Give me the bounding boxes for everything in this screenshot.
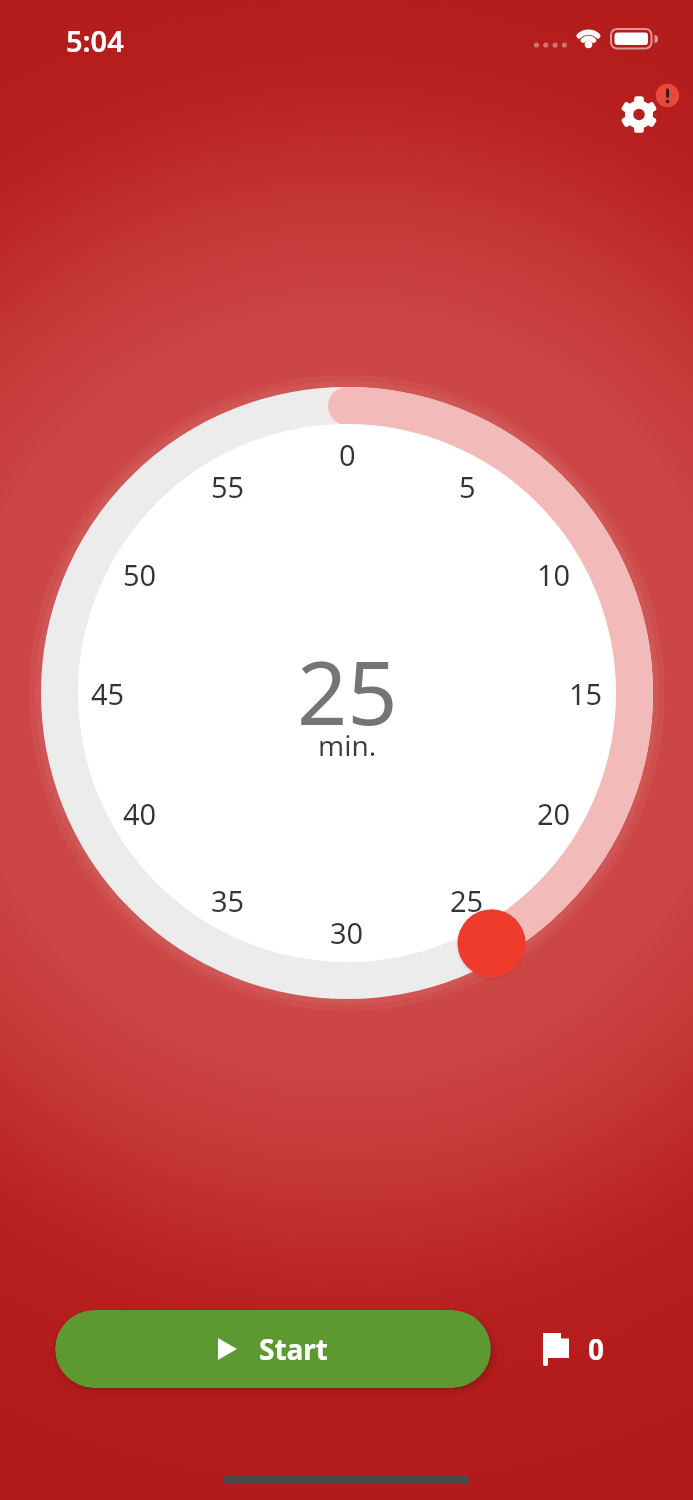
staticText: 10: [537, 555, 571, 594]
staticText: 35: [211, 881, 245, 920]
staticText: 55: [211, 467, 245, 506]
staticText: 0: [588, 1330, 605, 1368]
button[interactable]: 0: [525, 1320, 625, 1378]
button[interactable]: Start: [55, 1310, 491, 1388]
staticText: 5:04: [66, 21, 124, 55]
staticText: 40: [123, 794, 157, 833]
staticText: 5: [459, 467, 476, 506]
button[interactable]: [614, 77, 684, 143]
staticText: 0: [339, 435, 356, 474]
staticText: Start: [259, 1330, 329, 1368]
staticText: min.: [318, 726, 377, 764]
staticText: 30: [330, 913, 364, 952]
staticText: 45: [91, 674, 125, 713]
staticText: 25: [450, 881, 484, 920]
staticText: 25: [297, 631, 398, 751]
staticText: 20: [537, 794, 571, 833]
staticText: 15: [569, 674, 603, 713]
staticText: 50: [123, 555, 157, 594]
